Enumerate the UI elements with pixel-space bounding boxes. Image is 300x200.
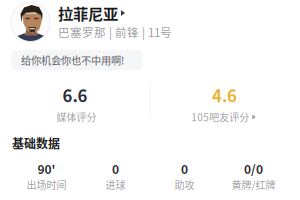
button[interactable]: 105吧友评分 <box>163 110 283 124</box>
staticText: 105吧友评分 <box>191 110 249 124</box>
staticText: 0 <box>112 160 119 177</box>
staticText: 拉菲尼亚 <box>58 2 118 24</box>
staticText: 巴塞罗那 | 前锋 | 11号 <box>58 24 172 40</box>
staticText: 4.6 <box>212 83 237 107</box>
staticText: 90' <box>37 160 55 177</box>
staticText: 基础数据 <box>12 134 60 152</box>
staticText: 媒体评分 <box>56 110 96 124</box>
staticText: 6.6 <box>62 83 87 107</box>
staticText: 黄牌/红牌 <box>231 177 275 192</box>
staticText: 0/0 <box>244 160 263 177</box>
staticText: 助攻 <box>174 177 194 192</box>
staticText: 给你机会你也不中用啊! <box>21 53 124 67</box>
button[interactable]: 拉菲尼亚 <box>58 3 178 23</box>
staticText: 出场时间 <box>26 177 66 192</box>
staticText: 进球 <box>105 177 125 192</box>
staticText: 0 <box>181 160 188 177</box>
